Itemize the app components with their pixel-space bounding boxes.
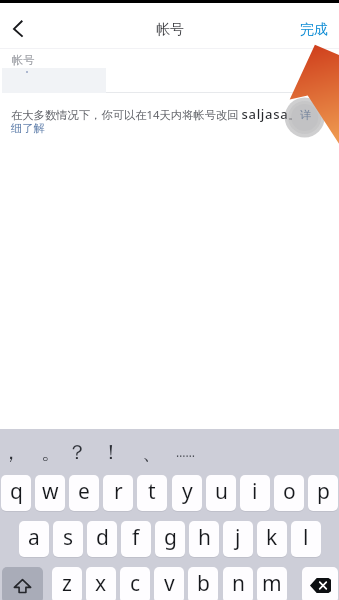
staticText: p [317, 477, 330, 506]
button[interactable]: Backspace [302, 567, 338, 600]
button[interactable]: w [35, 475, 65, 511]
button[interactable]: Back [0, 3, 36, 48]
staticText: s [63, 523, 74, 552]
staticText: v [164, 569, 175, 598]
staticText: k [266, 523, 278, 552]
button[interactable]: c [120, 567, 150, 600]
staticText: 帐号 [12, 53, 35, 67]
button[interactable]: f [121, 521, 151, 557]
button[interactable]: d [87, 521, 117, 557]
staticText: z [62, 569, 72, 598]
staticText: h [198, 523, 211, 552]
staticText: j [235, 523, 241, 552]
button[interactable]: ？ [60, 429, 94, 475]
button[interactable]: r [103, 475, 133, 511]
staticText: …… [176, 444, 195, 460]
button[interactable]: a [19, 521, 49, 557]
button[interactable]: k [257, 521, 287, 557]
staticText: i [252, 477, 258, 506]
button[interactable]: b [188, 567, 218, 600]
button[interactable]: 。 [34, 429, 68, 475]
button[interactable]: o [274, 475, 304, 511]
button[interactable]: v [154, 567, 184, 600]
staticText: u [215, 477, 228, 506]
staticText: 、 [142, 440, 162, 465]
staticText: ！ [101, 440, 121, 465]
button[interactable]: ！ [94, 429, 128, 475]
staticText: 完成 [300, 21, 328, 39]
staticText: e [78, 477, 90, 506]
button[interactable]: ， [0, 429, 28, 475]
staticText: ？ [67, 440, 87, 465]
staticText: d [96, 523, 109, 552]
staticText: m [262, 569, 282, 598]
staticText: a [28, 523, 40, 552]
button[interactable]: x [86, 567, 116, 600]
staticText: y [182, 477, 193, 506]
staticText: ， [1, 440, 21, 465]
button[interactable]: t [137, 475, 167, 511]
button[interactable]: n [223, 567, 253, 600]
button[interactable]: m [257, 567, 287, 600]
button[interactable]: y [172, 475, 202, 511]
staticText: n [232, 569, 245, 598]
button[interactable]: 细了解 [11, 121, 45, 135]
staticText: r [114, 477, 123, 506]
staticText: g [164, 523, 177, 552]
staticText: c [130, 569, 141, 598]
button[interactable]: i [240, 475, 270, 511]
staticText: 。 [41, 440, 61, 465]
staticText: f [132, 523, 140, 552]
button[interactable]: j [223, 521, 253, 557]
button[interactable]: z [52, 567, 82, 600]
staticText: l [303, 523, 309, 552]
button[interactable]: u [206, 475, 236, 511]
button[interactable]: 完成 [285, 3, 339, 48]
staticText: t [148, 477, 156, 506]
staticText: 帐号 [156, 21, 184, 39]
button[interactable]: h [189, 521, 219, 557]
button[interactable]: s [53, 521, 83, 557]
staticText: w [42, 477, 59, 506]
button[interactable]: e [69, 475, 99, 511]
button[interactable]: 、 [135, 429, 169, 475]
staticText: x [95, 569, 107, 598]
staticText: o [283, 477, 296, 506]
button[interactable]: Shift [2, 567, 43, 600]
staticText: 在大多数情况下，你可以在14天内将帐号改回 saljasa。详 [11, 105, 311, 123]
staticText: b [197, 569, 210, 598]
button[interactable]: q [1, 475, 31, 511]
button[interactable]: p [308, 475, 338, 511]
staticText: q [10, 477, 23, 506]
button[interactable]: …… [168, 429, 202, 475]
button[interactable]: g [155, 521, 185, 557]
button[interactable]: l [291, 521, 321, 557]
